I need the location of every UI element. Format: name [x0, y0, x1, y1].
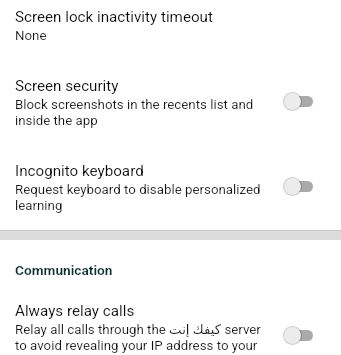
staticText: Block screenshots in the recents list an…	[15, 97, 261, 129]
staticText: Communication	[15, 262, 113, 278]
staticText: Always relay calls	[15, 302, 135, 320]
button[interactable]: Incognito keyboard	[0, 145, 341, 230]
button[interactable]: Screen security	[283, 88, 323, 114]
button[interactable]: Screen lock inactivity timeout	[0, 0, 341, 60]
staticText: None	[15, 28, 47, 44]
staticText: Request keyboard to disable personalized…	[15, 182, 261, 214]
staticText: Screen lock inactivity timeout	[15, 8, 213, 26]
button[interactable]: Incognito keyboard	[283, 173, 323, 199]
staticText: Incognito keyboard	[15, 162, 144, 180]
button[interactable]: Always relay calls	[283, 322, 323, 348]
staticText: Relay all calls through the كيفك إنت ser…	[15, 322, 261, 355]
button[interactable]: Always relay calls	[0, 302, 341, 355]
button[interactable]: Screen security	[0, 60, 341, 145]
staticText: Screen security	[15, 77, 119, 95]
